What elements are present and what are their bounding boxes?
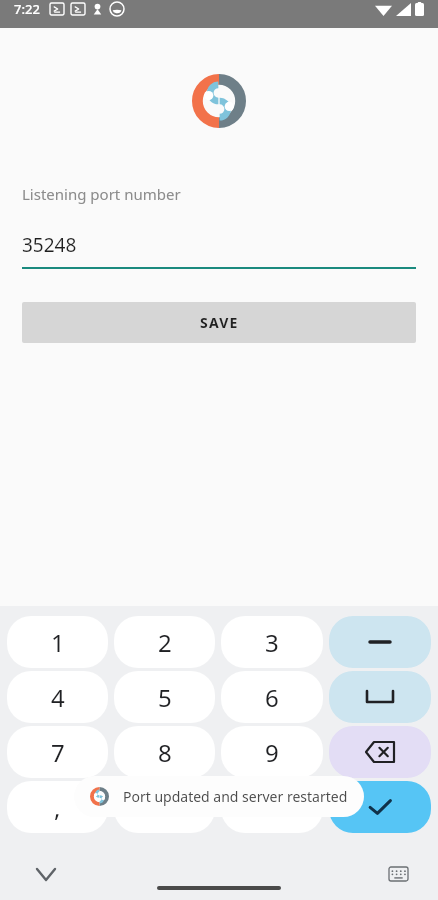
staticText: .: [269, 791, 276, 824]
staticText: 3: [265, 626, 279, 659]
button[interactable]: 3: [221, 616, 323, 668]
button[interactable]: 0: [114, 781, 215, 833]
staticText: 4: [51, 681, 65, 714]
button[interactable]: 4: [7, 671, 108, 723]
button[interactable]: 7: [7, 726, 108, 778]
button[interactable]: 1: [7, 616, 108, 668]
button[interactable]: SAVE: [22, 302, 416, 343]
button[interactable]: 8: [114, 726, 215, 778]
staticText: 0: [158, 791, 172, 824]
button[interactable]: .: [221, 781, 323, 833]
button[interactable]: Minus: [329, 616, 431, 668]
staticText: 8: [158, 736, 172, 769]
staticText: 7: [51, 736, 65, 769]
button[interactable]: 2: [114, 616, 215, 668]
button[interactable]: Enter: [329, 781, 431, 833]
staticText: 5: [158, 681, 172, 714]
staticText: Port updated and server restarted: [123, 787, 348, 806]
staticText: ,: [54, 791, 61, 824]
staticText: 6: [265, 681, 279, 714]
button[interactable]: 9: [221, 726, 323, 778]
button[interactable]: 6: [221, 671, 323, 723]
button[interactable]: ,: [7, 781, 108, 833]
button[interactable]: Space: [329, 671, 431, 723]
button[interactable]: 5: [114, 671, 215, 723]
staticText: SAVE: [200, 313, 239, 332]
staticText: 2: [158, 626, 172, 659]
button[interactable]: Backspace: [329, 726, 431, 778]
staticText: Listening port number: [22, 184, 181, 204]
button[interactable]: Switch keyboard: [380, 856, 416, 892]
staticText: 9: [265, 736, 279, 769]
staticText: 35248: [22, 232, 77, 258]
staticText: 7:22: [14, 0, 40, 18]
button[interactable]: Hide keyboard: [28, 856, 64, 892]
staticText: 1: [51, 626, 65, 659]
